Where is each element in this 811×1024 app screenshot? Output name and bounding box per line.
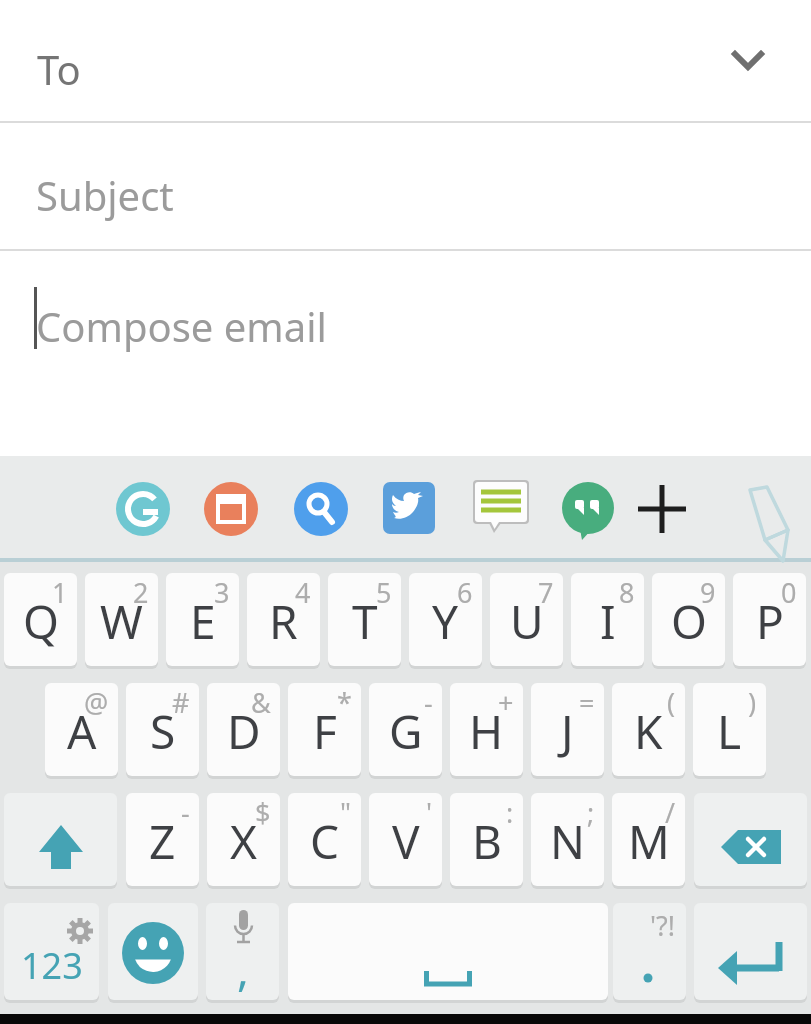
staticText: '?! <box>650 907 676 944</box>
button[interactable]: G <box>369 683 442 779</box>
button[interactable]: Compose email <box>0 251 811 456</box>
staticText: $ <box>255 794 271 831</box>
staticText: G <box>389 700 423 763</box>
staticText: O <box>671 590 707 653</box>
button[interactable] <box>472 479 530 537</box>
staticText: H <box>469 700 504 763</box>
button[interactable]: Y <box>409 573 482 669</box>
staticText: - <box>181 794 190 831</box>
button[interactable]: P <box>733 573 806 669</box>
staticText: : <box>506 794 514 831</box>
button[interactable]: N <box>531 793 604 889</box>
staticText: L <box>717 700 742 763</box>
button[interactable] <box>382 482 436 536</box>
button[interactable]: Z <box>126 793 199 889</box>
button[interactable] <box>294 482 348 536</box>
staticText: Q <box>23 590 59 653</box>
staticText: ' <box>426 794 433 831</box>
button[interactable] <box>108 903 198 1003</box>
staticText: F <box>313 700 337 763</box>
button[interactable]: S <box>126 683 199 779</box>
staticText: V <box>392 810 420 873</box>
staticText: 5 <box>376 574 392 611</box>
button[interactable] <box>637 484 687 534</box>
staticText: Z <box>149 810 176 873</box>
button[interactable] <box>561 482 615 536</box>
staticText: 9 <box>700 574 716 611</box>
staticText: A <box>67 700 97 763</box>
button[interactable]: , <box>206 903 279 1003</box>
button[interactable] <box>204 482 258 536</box>
staticText: 4 <box>295 574 311 611</box>
staticText: Subject <box>36 168 174 222</box>
button[interactable]: E <box>166 573 239 669</box>
staticText: W <box>100 590 143 653</box>
staticText: M <box>628 810 670 873</box>
staticText: = <box>579 684 595 721</box>
staticText: K <box>634 700 663 763</box>
button[interactable]: Subject <box>0 123 811 249</box>
staticText: X <box>230 810 257 873</box>
staticText: , <box>237 939 249 999</box>
button[interactable] <box>4 793 117 889</box>
staticText: " <box>340 794 352 831</box>
staticText: I <box>600 590 616 653</box>
button[interactable]: H <box>450 683 523 779</box>
button[interactable]: To <box>0 0 811 122</box>
button[interactable]: '?! <box>613 903 686 1003</box>
button[interactable] <box>288 903 608 1003</box>
staticText: C <box>310 810 340 873</box>
button[interactable]: I <box>571 573 644 669</box>
button[interactable]: M <box>612 793 685 889</box>
staticText: 0 <box>781 574 797 611</box>
staticText: Compose email <box>36 299 327 353</box>
staticText: / <box>665 794 676 831</box>
staticText: 1 <box>52 574 68 611</box>
button[interactable] <box>694 903 807 1003</box>
staticText: 3 <box>214 574 230 611</box>
button[interactable]: L <box>693 683 766 779</box>
button[interactable]: O <box>652 573 725 669</box>
staticText: ( <box>667 684 676 721</box>
staticText: J <box>561 700 574 763</box>
button[interactable]: J <box>531 683 604 779</box>
staticText: 123 <box>21 941 83 990</box>
staticText: - <box>424 684 433 721</box>
button[interactable]: F <box>288 683 361 779</box>
staticText: N <box>550 810 585 873</box>
staticText: ; <box>587 794 595 831</box>
button[interactable]: T <box>328 573 401 669</box>
button[interactable]: 123 <box>4 903 99 1003</box>
staticText: 7 <box>538 574 554 611</box>
staticText: 6 <box>457 574 473 611</box>
staticText: Y <box>432 590 459 653</box>
button[interactable]: K <box>612 683 685 779</box>
staticText: To <box>37 42 81 96</box>
staticText: S <box>150 700 176 763</box>
staticText: U <box>510 590 544 653</box>
button[interactable]: D <box>207 683 280 779</box>
staticText: @ <box>84 684 109 721</box>
button[interactable]: X <box>207 793 280 889</box>
staticText: ) <box>748 684 757 721</box>
button[interactable]: B <box>450 793 523 889</box>
button[interactable]: C <box>288 793 361 889</box>
button[interactable]: W <box>85 573 158 669</box>
button[interactable]: A <box>45 683 118 779</box>
button[interactable]: U <box>490 573 563 669</box>
button[interactable] <box>694 793 807 889</box>
staticText: 8 <box>619 574 635 611</box>
button[interactable]: Q <box>4 573 77 669</box>
staticText: B <box>472 810 502 873</box>
staticText: E <box>190 590 216 653</box>
staticText: 2 <box>133 574 149 611</box>
button[interactable]: V <box>369 793 442 889</box>
button[interactable] <box>116 482 170 536</box>
staticText: & <box>251 684 271 721</box>
staticText: P <box>756 590 784 653</box>
staticText: * <box>337 684 352 721</box>
staticText: + <box>498 684 514 721</box>
staticText: D <box>227 700 261 763</box>
staticText: T <box>352 590 378 653</box>
button[interactable]: R <box>247 573 320 669</box>
